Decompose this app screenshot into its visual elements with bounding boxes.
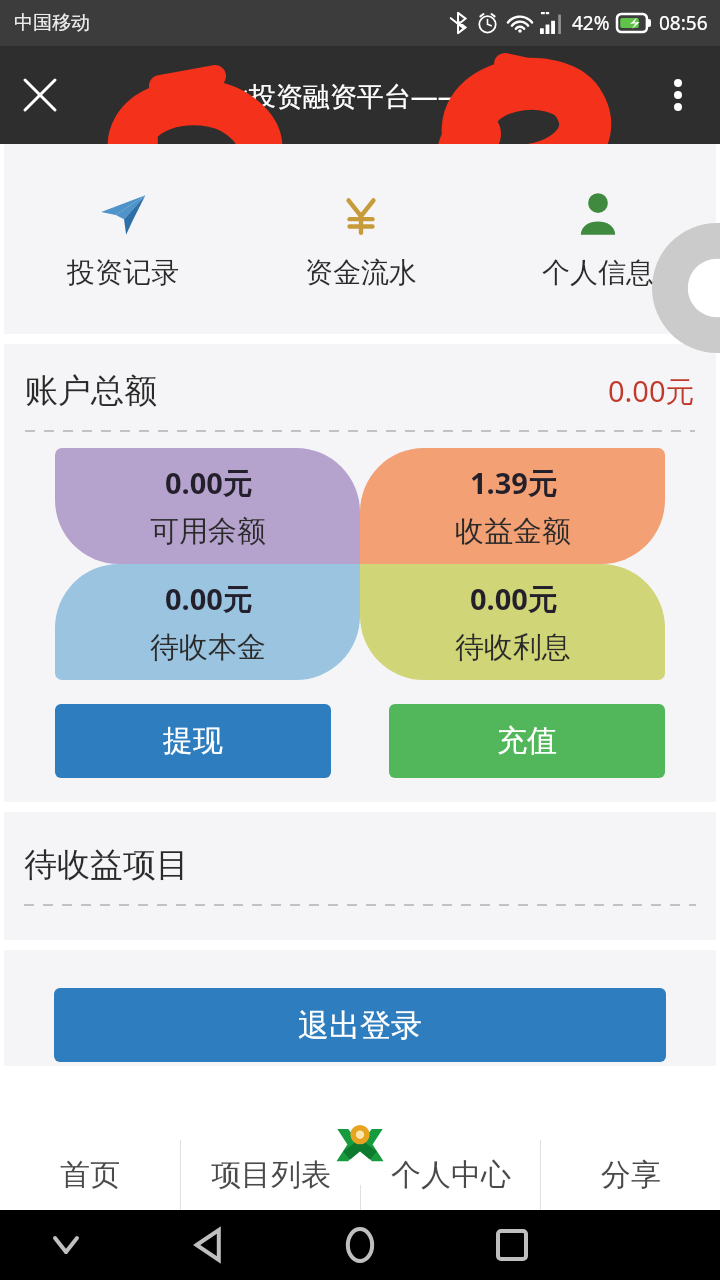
button[interactable]: 资金流水 — [242, 144, 479, 334]
staticText: 投资记录 — [67, 255, 179, 290]
staticText: 退出登录 — [298, 1006, 422, 1045]
button[interactable]: 首页 — [0, 1140, 180, 1210]
button[interactable]: 分享 — [541, 1140, 720, 1210]
staticText: 首页 — [60, 1156, 120, 1194]
button[interactable]: Recents — [474, 1210, 550, 1280]
button[interactable]: 0.00元 — [360, 564, 665, 680]
button[interactable]: 投资记录 — [4, 144, 242, 334]
staticText: 充值 — [497, 722, 557, 760]
staticText: 分享 — [601, 1156, 661, 1194]
button[interactable]: 充值 — [389, 704, 665, 778]
staticText: 资金流水 — [305, 255, 417, 290]
button[interactable]: 提现 — [55, 704, 331, 778]
staticText: 0.00元 — [608, 371, 695, 411]
button[interactable]: 0.00元 — [55, 448, 360, 564]
staticText: 收益金额 — [455, 513, 571, 550]
staticText: 0.00元 — [470, 579, 557, 619]
button[interactable]: 0.00元 — [55, 564, 360, 680]
button[interactable]: Floating assistant — [652, 223, 720, 353]
button[interactable]: 个人信息 — [479, 144, 716, 334]
button[interactable]: 退出登录 — [54, 988, 666, 1062]
button[interactable]: Back — [170, 1210, 246, 1280]
staticText: ××××投资融资平台——×××... — [187, 77, 533, 114]
staticText: 项目列表 — [211, 1156, 331, 1194]
staticText: 08:56 — [659, 10, 708, 36]
staticText: 1.39元 — [470, 463, 557, 503]
button[interactable]: Home logo — [318, 1108, 402, 1178]
button[interactable]: Hide keyboard — [44, 1223, 88, 1267]
staticText: 个人信息 — [542, 255, 654, 290]
button[interactable]: 1.39元 — [360, 448, 665, 564]
staticText: 可用余额 — [150, 513, 266, 550]
staticText: 中国移动 — [14, 11, 90, 35]
button[interactable]: 项目列表 — [181, 1140, 360, 1210]
staticText: 0.00元 — [165, 579, 252, 619]
button[interactable]: 个人中心 — [361, 1140, 540, 1210]
staticText: 待收本金 — [150, 629, 266, 666]
staticText: 提现 — [163, 722, 223, 760]
staticText: 待收益项目 — [24, 844, 189, 886]
button[interactable]: More options — [650, 67, 706, 123]
staticText: 待收利息 — [455, 629, 571, 666]
staticText: 个人中心 — [391, 1156, 511, 1194]
staticText: 42% — [572, 10, 610, 36]
staticText: 0.00元 — [165, 463, 252, 503]
button[interactable]: Close — [12, 67, 68, 123]
button[interactable]: Home — [322, 1210, 398, 1280]
staticText: 账户总额 — [25, 370, 157, 412]
